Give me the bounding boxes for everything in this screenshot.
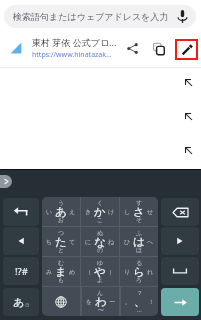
staticText: お [58,216,65,224]
staticText: す [136,199,143,207]
staticText: さ [133,205,145,219]
staticText: ？ [137,289,143,297]
staticText: ぬ [97,229,104,237]
staticText: よ [97,276,104,284]
staticText: む [58,259,65,267]
staticText: a [25,299,30,309]
staticText: く [97,199,104,207]
staticText: つ [58,229,65,237]
staticText: れ [147,268,154,276]
staticText: あ [13,295,25,309]
button[interactable]: や [81,257,119,286]
staticText: ち [46,238,53,246]
staticText: み [46,268,53,276]
staticText: 。 [125,298,131,306]
staticText: ら [133,265,145,279]
staticText: せ [147,208,154,216]
button[interactable]: Enter [161,288,199,316]
staticText: の [97,246,104,254]
staticText: 東村 芽依 公式プロ... [32,36,117,48]
staticText: て [69,238,76,246]
button[interactable]: な [81,227,119,256]
staticText: ー [109,298,115,306]
staticText: ま [55,265,67,279]
button[interactable]: わ [82,287,119,316]
staticText: （ [85,268,91,276]
button[interactable]: 東村 芽依 公式プロ... [0,29,201,67]
staticText: に [85,238,92,246]
button[interactable]: Copy [148,38,169,59]
staticText: る [136,259,143,267]
button[interactable]: Switch language [42,287,80,316]
button[interactable]: Undo [3,198,39,226]
staticText: か [94,205,106,219]
button[interactable]: 検索語句またはウェブアドレスを入力 [4,5,196,28]
button[interactable]: ま [42,257,80,286]
button[interactable]: は [120,227,158,256]
staticText: な [94,235,106,249]
button[interactable]: Share [122,38,143,59]
staticText: し [124,208,131,216]
staticText: た [55,235,67,249]
staticText: へ [147,238,154,246]
button[interactable]: た [42,227,80,256]
staticText: り [124,268,131,276]
staticText: き [85,208,92,216]
staticText: え [69,208,76,216]
button[interactable]: ら [120,257,158,286]
staticText: 〜 [98,306,104,314]
staticText: も [58,276,65,284]
button[interactable]: Move cursor left [3,227,39,255]
staticText: !?# [15,265,28,278]
staticText: わ [95,295,107,309]
staticText: と [58,246,65,254]
button[interactable]: !?# [3,257,39,285]
staticText: 検索語句またはウェブアドレスを入力 [13,11,169,22]
staticText: ！ [148,298,154,306]
button[interactable]: あ [42,197,80,226]
staticText: ふ [136,229,143,237]
staticText: ほ [136,246,143,254]
staticText: ゆ [97,259,104,267]
button[interactable]: 、 [121,287,158,316]
staticText: う [58,199,65,207]
staticText: を [86,298,93,306]
staticText: ひ [124,238,131,246]
staticText: ね [108,238,115,246]
button[interactable]: さ [120,197,158,226]
staticText: め [69,268,76,276]
button[interactable]: Expand toolbar [0,175,12,188]
staticText: ろ [136,276,143,284]
staticText: … [137,306,142,314]
button[interactable]: Voice search [176,10,189,23]
staticText: や [94,265,106,279]
staticText: こ [97,216,104,224]
button[interactable]: Edit [175,39,198,60]
button[interactable]: か [81,197,119,226]
button[interactable]: Space [161,257,199,285]
staticText: ） [109,268,115,276]
button[interactable]: Move cursor right [161,227,199,255]
staticText: い [46,208,53,216]
staticText: https://www.hinatazak... [32,50,112,60]
staticText: ん [97,289,104,297]
staticText: そ [136,216,143,224]
staticText: 、 [134,295,146,309]
staticText: け [108,208,115,216]
staticText: あ [55,205,67,219]
staticText: は [133,235,145,249]
button[interactable]: Backspace [161,198,199,226]
button[interactable]: あ [3,288,39,316]
